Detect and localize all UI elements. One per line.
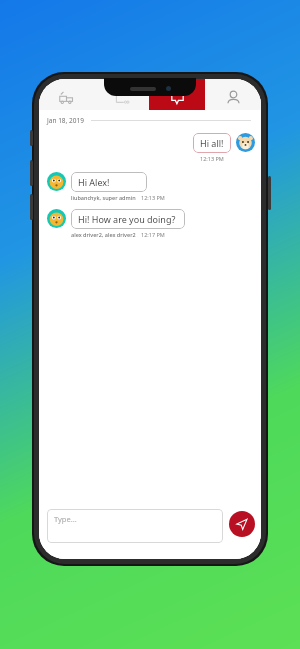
staticText: Hi all! [200, 137, 224, 149]
button[interactable]: Send [229, 511, 255, 537]
staticText: liubanchyk, super admin [71, 194, 136, 201]
button[interactable]: Hi! How are you doing? [71, 209, 185, 229]
button[interactable]: Hi Alex! [71, 172, 147, 192]
button[interactable]: Profile [205, 79, 261, 110]
staticText: Type... [54, 514, 77, 524]
button[interactable]: Tasks [94, 79, 149, 110]
staticText: alex driver2, alex driver2 [71, 231, 136, 238]
staticText: 12:17 PM [141, 231, 165, 238]
staticText: Hi Alex! [78, 176, 110, 188]
button[interactable]: Reports [39, 79, 94, 110]
staticText: 12:13 PM [200, 155, 224, 162]
staticText: Jan 18, 2019 [47, 116, 84, 125]
button[interactable]: Hi all! [193, 133, 231, 153]
staticText: Hi! How are you doing? [78, 213, 176, 225]
button[interactable]: Chat [149, 79, 205, 110]
staticText: 12:13 PM [141, 194, 165, 201]
button[interactable]: Type... [47, 509, 223, 543]
